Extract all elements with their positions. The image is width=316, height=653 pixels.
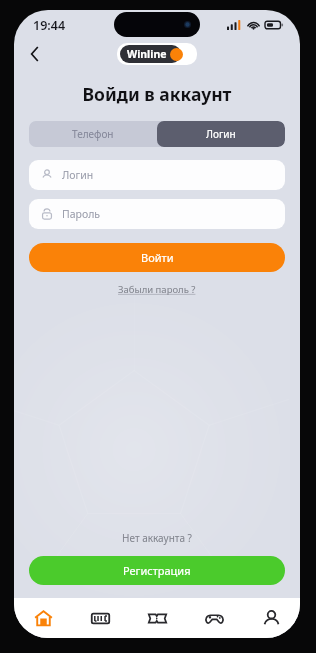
button[interactable]: Логин bbox=[157, 121, 285, 147]
staticText: Логин bbox=[62, 168, 94, 182]
button[interactable]: Логин bbox=[29, 160, 285, 190]
button[interactable]: Live bbox=[72, 598, 129, 638]
button[interactable]: Profile bbox=[243, 598, 300, 638]
button[interactable]: Телефон bbox=[29, 121, 157, 147]
staticText: Winline bbox=[127, 47, 167, 61]
button[interactable]: Back bbox=[20, 40, 50, 68]
button[interactable]: Coupon bbox=[129, 598, 186, 638]
staticText: Логин bbox=[206, 127, 236, 141]
button[interactable]: Пароль bbox=[29, 199, 285, 229]
button[interactable]: Забыли пароль ? bbox=[112, 281, 202, 298]
staticText: Телефон bbox=[72, 127, 114, 141]
button[interactable]: Регистрация bbox=[29, 556, 285, 585]
button[interactable]: Войти bbox=[29, 243, 285, 272]
staticText: Войди в аккаунт bbox=[14, 82, 300, 106]
button[interactable]: Winline bbox=[120, 45, 194, 63]
staticText: Забыли пароль ? bbox=[118, 283, 196, 296]
staticText: Нет аккаунта ? bbox=[14, 531, 300, 545]
button[interactable]: Home bbox=[14, 598, 72, 638]
staticText: Пароль bbox=[62, 207, 101, 221]
button[interactable]: Games bbox=[186, 598, 243, 638]
staticText: 19:44 bbox=[33, 17, 66, 34]
staticText: Войти bbox=[141, 250, 174, 265]
staticText: Регистрация bbox=[123, 563, 191, 578]
